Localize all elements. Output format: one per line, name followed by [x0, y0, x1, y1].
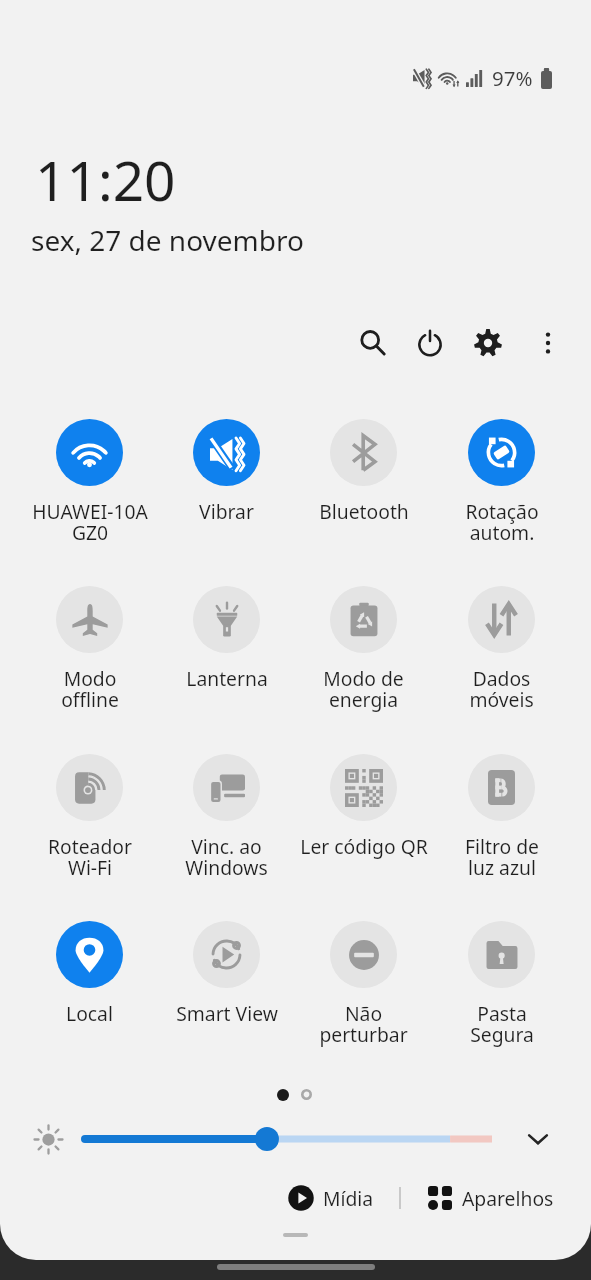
button[interactable]: Search: [350, 320, 396, 366]
button[interactable]: Dados móveis: [433, 586, 570, 713]
staticText: Smart View: [176, 1000, 278, 1026]
staticText: HUAWEI-10A GZ0: [32, 498, 148, 546]
staticText: Local: [66, 1000, 113, 1026]
button[interactable]: Não perturbar: [295, 921, 432, 1048]
button[interactable]: Local: [21, 921, 158, 1026]
staticText: sex, 27 de novembro: [31, 221, 304, 259]
staticText: Filtro de luz azul: [465, 833, 539, 881]
button[interactable]: Pasta Segura: [433, 921, 570, 1048]
staticText: Ler código QR: [300, 833, 428, 859]
staticText: Modo de energia: [323, 665, 404, 713]
button[interactable]: Settings: [465, 320, 511, 366]
button[interactable]: Mídia: [284, 1180, 378, 1216]
staticText: Lanterna: [186, 665, 268, 691]
staticText: Bluetooth: [319, 498, 409, 524]
button[interactable]: Modo de energia: [295, 586, 432, 713]
button[interactable]: More options: [525, 320, 571, 366]
staticText: Pasta Segura: [470, 1000, 534, 1048]
staticText: Modo offline: [61, 665, 119, 713]
button[interactable]: HUAWEI-10A GZ0: [21, 419, 158, 546]
button[interactable]: Lanterna: [158, 586, 295, 691]
staticText: 97%: [492, 64, 533, 92]
staticText: Dados móveis: [469, 665, 534, 713]
staticText: Mídia: [323, 1185, 374, 1211]
staticText: Vinc. ao Windows: [185, 833, 268, 881]
button[interactable]: Expand brightness: [518, 1119, 558, 1159]
button[interactable]: Power off: [407, 320, 453, 366]
staticText: Não perturbar: [319, 1000, 408, 1048]
button[interactable]: Aparelhos: [424, 1180, 558, 1216]
staticText: Rotação autom.: [465, 498, 539, 546]
button[interactable]: Ler código QR: [295, 754, 432, 859]
button[interactable]: Rotação autom.: [433, 419, 570, 546]
staticText: Roteador Wi-Fi: [48, 833, 132, 881]
button[interactable]: Roteador Wi-Fi: [21, 754, 158, 881]
button[interactable]: Modo offline: [21, 586, 158, 713]
button[interactable]: Vibrar: [158, 419, 295, 524]
button[interactable]: Vinc. ao Windows: [158, 754, 295, 881]
button[interactable]: Smart View: [158, 921, 295, 1026]
staticText: 11:20: [35, 142, 176, 217]
button[interactable]: Bluetooth: [295, 419, 432, 524]
staticText: Vibrar: [199, 498, 254, 524]
button[interactable]: Filtro de luz azul: [433, 754, 570, 881]
staticText: Aparelhos: [462, 1185, 554, 1211]
